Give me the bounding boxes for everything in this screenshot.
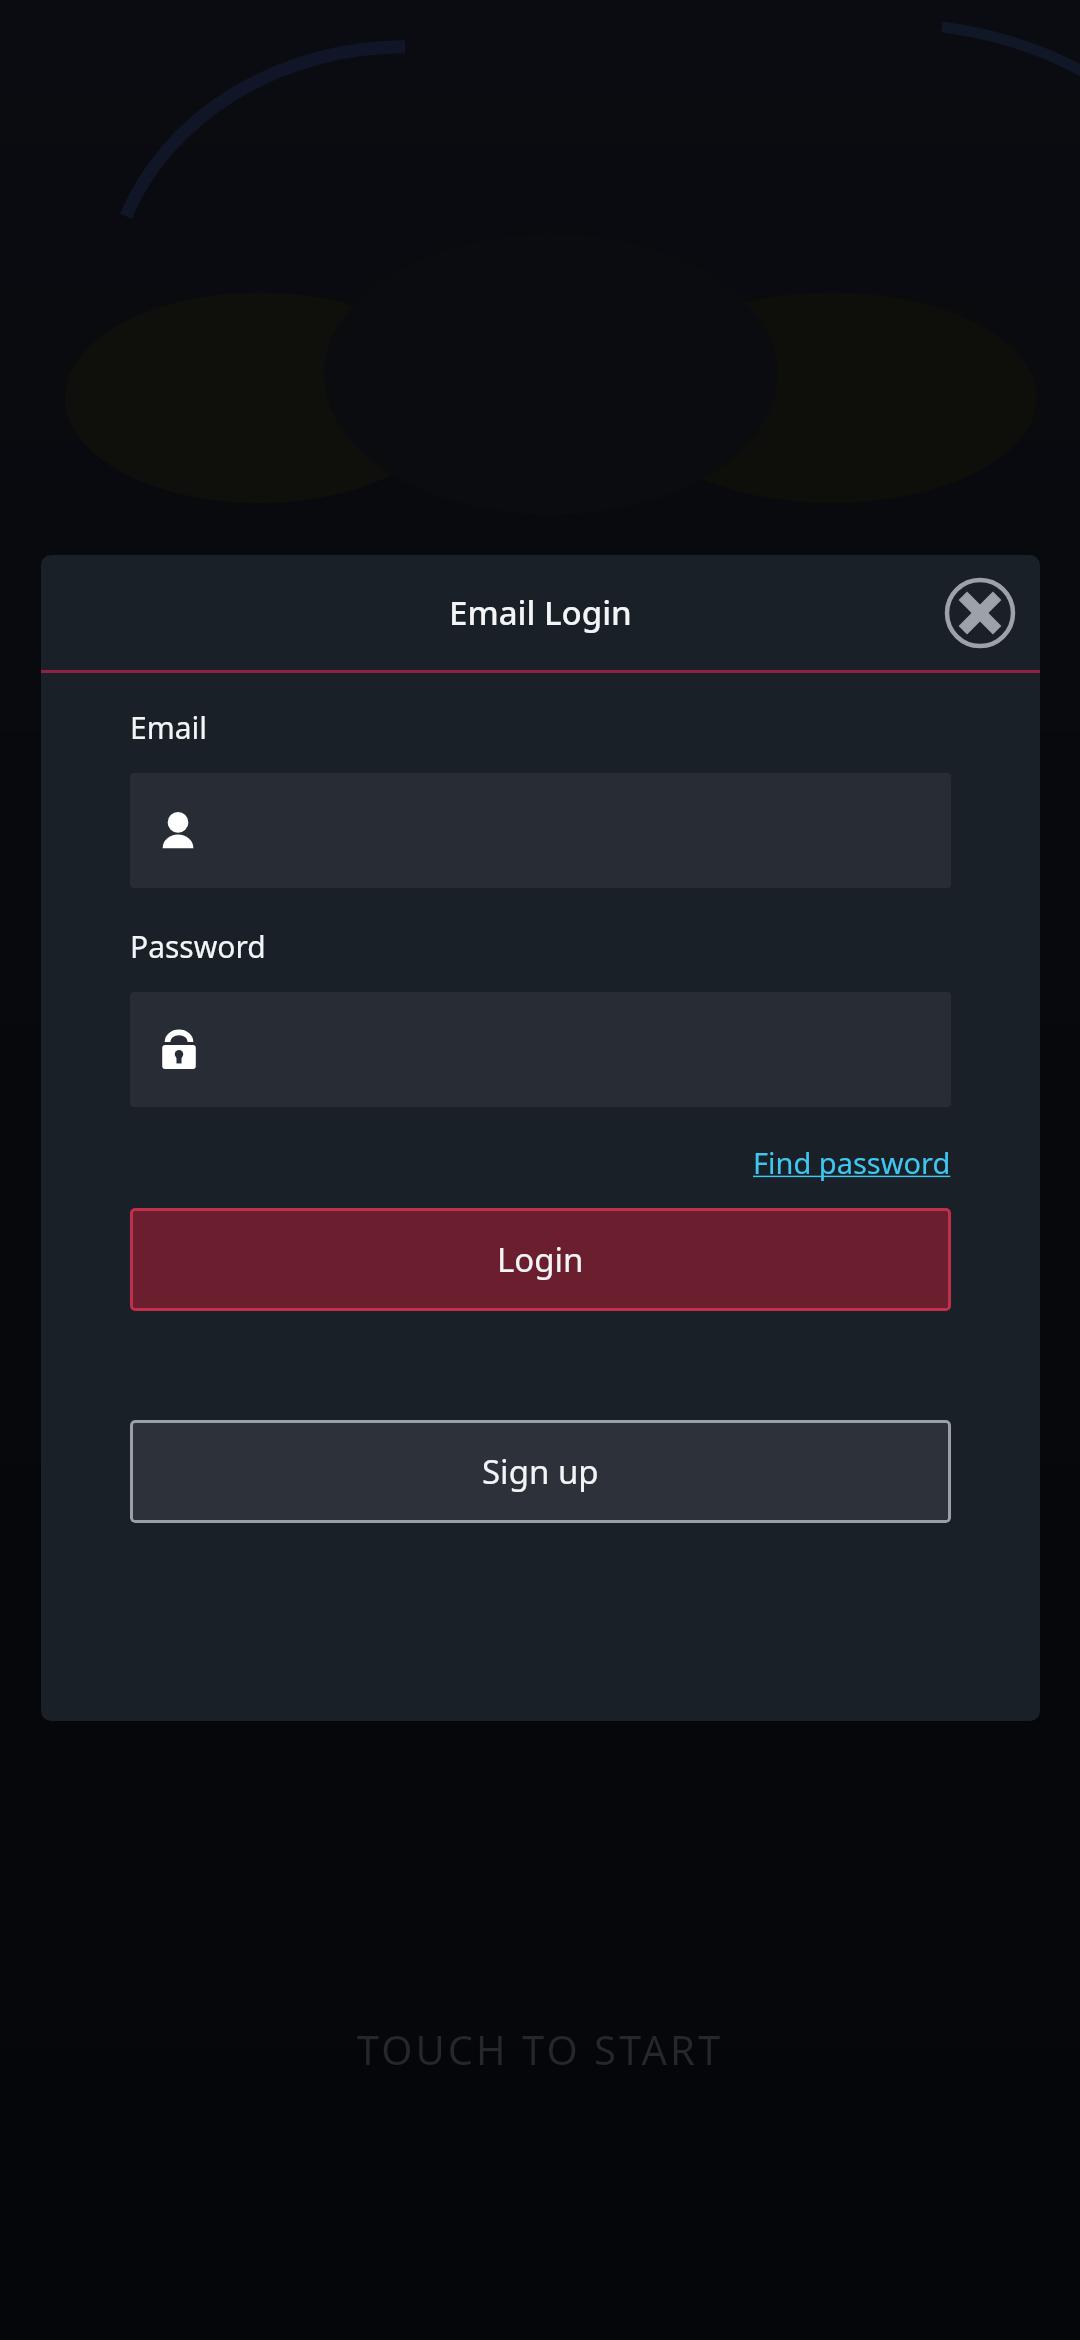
button[interactable]: Close (940, 573, 1020, 653)
button[interactable]: Login (130, 1208, 951, 1311)
staticText: Login (497, 1237, 584, 1282)
button[interactable] (130, 773, 951, 888)
button[interactable] (130, 992, 951, 1107)
staticText: Sign up (482, 1449, 599, 1494)
button[interactable]: Find password (753, 1139, 951, 1186)
staticText: Email Login (449, 590, 632, 635)
staticText: TOUCH TO START (0, 2022, 1080, 2076)
staticText: Email (130, 707, 208, 748)
button[interactable]: Sign up (130, 1420, 951, 1523)
staticText: Find password (753, 1143, 951, 1182)
staticText: Password (130, 926, 266, 967)
